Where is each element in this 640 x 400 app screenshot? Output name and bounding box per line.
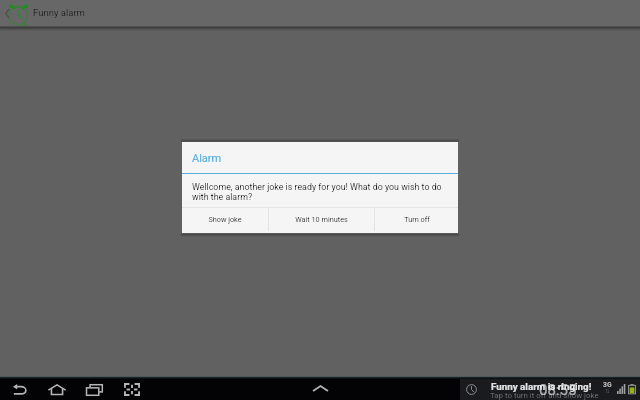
button[interactable]: Navigate up [1,6,13,21]
button[interactable]: Back [9,379,31,400]
staticText: Wellcome, another joke is ready for you!… [192,182,450,202]
staticText: Funny alarm is ringing! [491,381,592,392]
button[interactable]: Turn off [375,207,458,232]
staticText: Show joke [208,215,242,224]
button[interactable]: Wait 10 minutes [269,207,374,232]
staticText: Wait 10 minutes [295,215,348,224]
button[interactable]: Show joke [182,207,268,232]
button[interactable]: Funny alarm is ringing! [460,379,640,400]
button[interactable]: Show notifications [308,379,332,400]
button[interactable]: Screenshot [121,379,143,400]
staticText: 08:55 [539,381,577,399]
staticText: Turn off [404,215,430,224]
staticText: ⇅ [605,388,610,395]
button[interactable] [0,0,640,27]
button[interactable]: Home [46,379,68,400]
staticText: Tap to turn it off and show joke [490,391,599,400]
staticText: Funny alarm [33,7,85,18]
staticText: 3G [603,381,612,389]
button[interactable]: Recent apps [83,379,105,400]
staticText: Alarm [192,152,222,165]
